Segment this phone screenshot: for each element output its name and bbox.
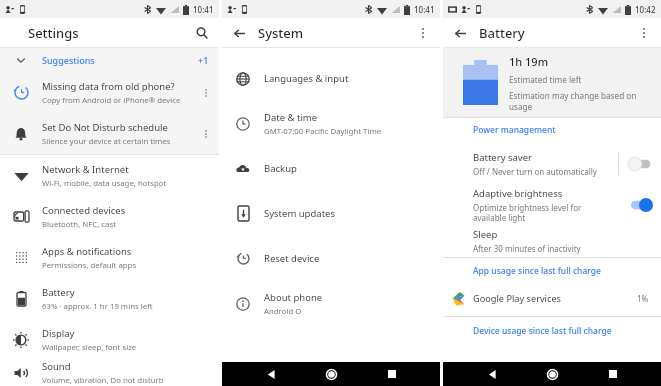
- staticText: Missing data from old phone?: [42, 80, 175, 93]
- button[interactable]: Recents: [601, 362, 625, 386]
- button[interactable]: More options: [197, 84, 215, 102]
- button[interactable]: Languages & input: [222, 56, 440, 101]
- button[interactable]: Sound: [0, 360, 219, 386]
- button[interactable]: More options: [197, 125, 215, 143]
- button[interactable]: Back: [480, 362, 504, 386]
- staticText: Battery: [42, 286, 75, 299]
- staticText: Copy from Android or iPhone® device: [42, 95, 181, 106]
- button[interactable]: Connected devices: [0, 196, 219, 237]
- staticText: Suggestions: [42, 54, 95, 66]
- staticText: Battery saver: [473, 151, 532, 164]
- button[interactable]: More options: [412, 22, 434, 44]
- staticText: Sound: [42, 360, 71, 373]
- staticText: Battery: [479, 24, 525, 42]
- button[interactable]: Home: [319, 362, 343, 386]
- button[interactable]: Adaptive brightness: [443, 184, 661, 225]
- staticText: System updates: [264, 207, 335, 220]
- button[interactable]: Back: [259, 362, 283, 386]
- button[interactable]: Date & time: [222, 101, 440, 146]
- staticText: Settings: [28, 24, 79, 42]
- staticText: Display: [42, 327, 75, 340]
- staticText: Estimated time left: [509, 74, 582, 85]
- staticText: Optimize brightness level for available …: [473, 202, 582, 223]
- button[interactable]: Network & Internet: [0, 155, 219, 196]
- staticText: Languages & input: [264, 72, 349, 85]
- button[interactable]: More options: [633, 22, 655, 44]
- staticText: 63% · approx. 1 hr 19 mins left: [42, 301, 153, 312]
- staticText: Reset device: [264, 252, 320, 265]
- staticText: 1%: [637, 293, 649, 304]
- staticText: Date & time: [264, 111, 318, 124]
- staticText: Bluetooth, NFC, cast: [42, 219, 116, 230]
- button[interactable]: Sleep: [443, 225, 661, 257]
- staticText: App usage since last full charge: [473, 265, 601, 277]
- staticText: Android O: [264, 306, 302, 317]
- staticText: Network & Internet: [42, 163, 129, 176]
- button[interactable]: Adaptive brightness: [619, 190, 661, 220]
- button[interactable]: Home: [540, 362, 564, 386]
- button[interactable]: Search: [191, 22, 213, 44]
- staticText: Silence your device at certain times: [42, 136, 171, 147]
- button[interactable]: Missing data from old phone?: [0, 72, 219, 113]
- staticText: Wi-Fi, mobile, data usage, hotspot: [42, 178, 167, 189]
- button[interactable]: Apps & notifications: [0, 237, 219, 278]
- button[interactable]: Back: [228, 22, 250, 44]
- staticText: Sleep: [473, 228, 498, 241]
- staticText: Power management: [473, 124, 556, 136]
- staticText: Wallpaper, sleep, font size: [42, 342, 137, 353]
- button[interactable]: Reset device: [222, 236, 440, 281]
- button[interactable]: Device usage since last full charge: [473, 325, 612, 337]
- button[interactable]: Display: [0, 319, 219, 360]
- button[interactable]: Battery: [0, 278, 219, 319]
- staticText: 10:41: [414, 4, 435, 15]
- button[interactable]: Battery saver: [443, 143, 661, 184]
- button[interactable]: Set Do Not Disturb schedule: [0, 113, 219, 154]
- button[interactable]: Backup: [222, 146, 440, 191]
- staticText: Off / Never turn on automatically: [473, 166, 597, 177]
- staticText: Connected devices: [42, 204, 126, 217]
- staticText: 10:41: [193, 4, 214, 15]
- staticText: Estimation may change based on usage: [509, 90, 661, 112]
- staticText: GMT-07:00 Pacific Daylight Time: [264, 126, 382, 137]
- staticText: Permissions, default apps: [42, 260, 137, 271]
- staticText: Backup: [264, 162, 297, 175]
- staticText: Apps & notifications: [42, 245, 132, 258]
- staticText: Adaptive brightness: [473, 187, 563, 200]
- staticText: Google Play services: [473, 292, 561, 305]
- button[interactable]: System updates: [222, 191, 440, 236]
- staticText: Set Do Not Disturb schedule: [42, 121, 168, 134]
- button[interactable]: Suggestions: [0, 48, 219, 72]
- button[interactable]: About phone: [222, 281, 440, 326]
- staticText: 1h 19m: [509, 54, 549, 69]
- button[interactable]: Battery saver: [619, 149, 661, 179]
- staticText: 10:42: [635, 4, 656, 15]
- button[interactable]: Google Play services: [443, 285, 661, 311]
- button[interactable]: Back: [449, 22, 471, 44]
- staticText: Volume, vibration, Do not disturb: [42, 375, 164, 386]
- staticText: After 30 minutes of inactivity: [473, 243, 581, 254]
- staticText: System: [258, 24, 304, 42]
- staticText: +1: [198, 54, 209, 66]
- staticText: About phone: [264, 291, 323, 304]
- button[interactable]: Recents: [380, 362, 404, 386]
